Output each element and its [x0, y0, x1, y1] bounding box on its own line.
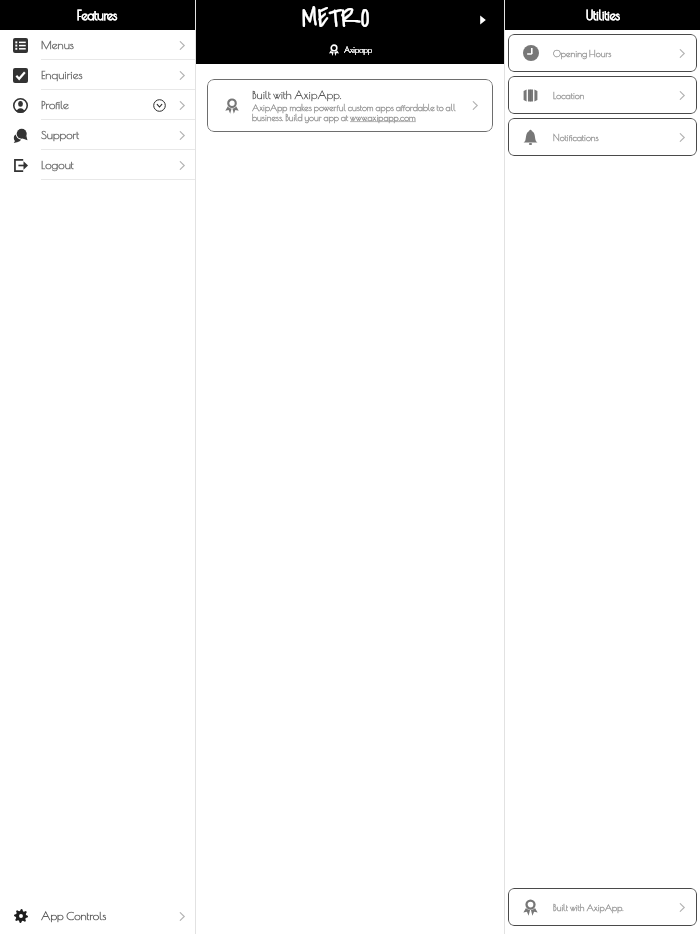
staticText: Notifications [553, 132, 599, 143]
staticText: Features [77, 8, 118, 22]
staticText: Profile [41, 98, 69, 112]
staticText: Menus [41, 38, 74, 52]
staticText: Logout [41, 158, 74, 172]
button[interactable]: Built with AxipApp. [207, 79, 493, 132]
staticText: Built with AxipApp. [553, 902, 624, 913]
staticText: App Controls [41, 909, 107, 923]
staticText: Menus [41, 38, 74, 52]
staticText: Built with AxipApp. [252, 88, 342, 101]
staticText: Notifications [553, 132, 599, 143]
staticText: Features [77, 8, 118, 22]
button[interactable]: Support [0, 120, 195, 150]
staticText: App Controls [41, 909, 107, 923]
staticText: Utilities [586, 8, 620, 22]
staticText: Support [41, 128, 80, 142]
staticText: Opening Hours [553, 48, 612, 59]
staticText: METRO [302, 1, 370, 37]
staticText: Enquiries [41, 68, 83, 82]
staticText: Utilities [586, 8, 620, 22]
staticText: Built with AxipApp. [252, 88, 342, 101]
staticText: Built with AxipApp. [553, 902, 624, 913]
staticText: Axipapp [344, 46, 373, 55]
staticText: Location [553, 90, 585, 101]
button[interactable]: Built with AxipApp. [508, 888, 697, 926]
button[interactable]: App Controls [0, 898, 195, 934]
button[interactable]: Opening Hours [508, 34, 697, 72]
button[interactable]: Profile [0, 90, 195, 120]
staticText: Logout [41, 158, 74, 172]
button[interactable]: Notifications [508, 118, 697, 156]
button[interactable]: Menus [0, 30, 195, 60]
button[interactable]: Logout [0, 150, 195, 180]
button[interactable]: Location [508, 76, 697, 114]
staticText: Opening Hours [553, 48, 612, 59]
staticText: Location [553, 90, 585, 101]
button[interactable]: Axipapp [328, 44, 373, 56]
staticText: Axipapp [344, 46, 373, 55]
staticText: Support [41, 128, 80, 142]
staticText: AxipApp makes powerful custom apps affor… [252, 102, 460, 123]
staticText: Enquiries [41, 68, 83, 82]
staticText: Profile [41, 98, 69, 112]
button[interactable]: Enquiries [0, 60, 195, 90]
staticText: AxipApp makes powerful custom apps affor… [252, 102, 460, 123]
button[interactable]: Next [468, 5, 497, 34]
